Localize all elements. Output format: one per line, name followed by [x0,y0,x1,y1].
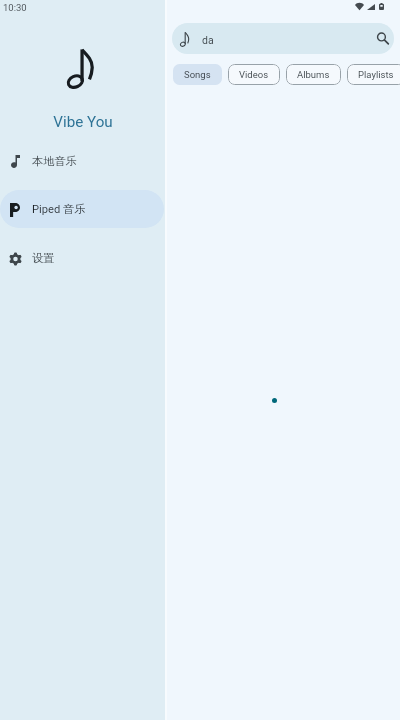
button[interactable]: Songs [173,64,222,85]
staticText: da [202,34,214,46]
other: Wi-Fi [355,3,364,10]
button[interactable]: 本地音乐 [0,142,164,180]
staticText: 10:30 [3,2,27,13]
button[interactable]: Search [372,28,393,49]
button[interactable]: Albums [286,64,341,85]
staticText: Vibe You [53,113,113,131]
button[interactable]: Playlists [347,64,400,85]
button[interactable]: Piped 音乐 [0,190,164,228]
staticText: 设置 [32,251,55,265]
staticText: Videos [239,69,269,80]
button[interactable]: da [172,23,394,54]
staticText: Songs [184,69,211,80]
button[interactable]: 设置 [0,239,164,277]
other: Battery [379,3,384,10]
staticText: 本地音乐 [32,154,77,168]
button[interactable]: Videos [228,64,280,85]
staticText: Albums [297,69,330,80]
other: Signal [367,4,375,10]
staticText: Playlists [358,69,394,80]
staticText: Piped 音乐 [32,202,86,216]
